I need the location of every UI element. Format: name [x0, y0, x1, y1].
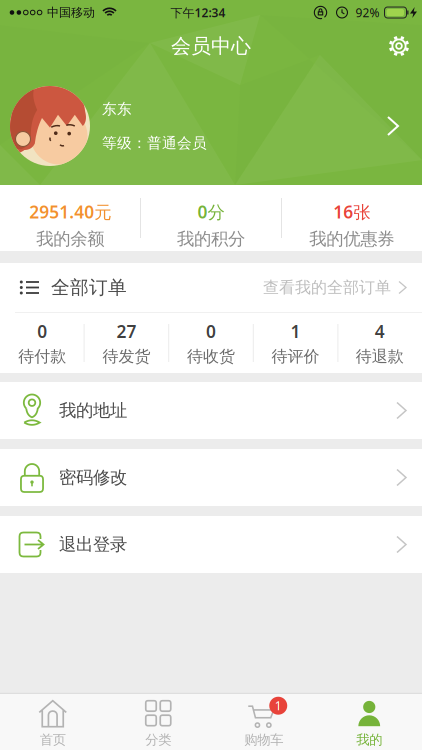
button[interactable]: 0分	[141, 193, 281, 243]
staticText: 退出登录	[59, 534, 127, 555]
staticText: 1	[290, 320, 300, 343]
staticText: 0	[206, 320, 216, 343]
staticText: 我的积分	[177, 228, 245, 250]
staticText: 购物车	[244, 732, 283, 748]
staticText: 分类	[145, 732, 171, 748]
button[interactable]: 0	[0, 320, 84, 366]
staticText: 我的	[356, 732, 382, 748]
button[interactable]: 东东	[0, 67, 422, 185]
button[interactable]: Settings	[388, 35, 422, 57]
staticText: 全部订单	[51, 276, 127, 299]
staticText: 密码修改	[59, 467, 127, 488]
staticText: 下午12:34	[170, 4, 225, 20]
staticText: 1	[275, 698, 282, 714]
staticText: 2951.40元	[29, 200, 111, 223]
staticText: 待退款	[356, 347, 404, 366]
button[interactable]: 16张	[281, 193, 422, 243]
staticText: 92%	[355, 4, 379, 20]
staticText: 4	[375, 320, 385, 343]
staticText: 待付款	[18, 347, 66, 366]
button[interactable]: 4	[338, 320, 422, 366]
button[interactable]: 2951.40元	[0, 193, 141, 243]
staticText: 27	[117, 320, 137, 343]
staticText: 0	[37, 320, 47, 343]
staticText: 待评价	[271, 347, 319, 366]
button[interactable]: 全部订单	[0, 263, 422, 312]
button[interactable]: 退出登录	[0, 516, 422, 573]
button[interactable]: 密码修改	[0, 449, 422, 506]
staticText: 查看我的全部订单	[263, 278, 391, 297]
staticText: 我的优惠券	[309, 228, 394, 250]
button[interactable]: 1	[253, 320, 338, 366]
staticText: 东东	[102, 100, 132, 118]
staticText: 待发货	[103, 347, 151, 366]
staticText: 待收货	[187, 347, 235, 366]
button[interactable]: 我的地址	[0, 382, 422, 439]
staticText: 中国移动	[47, 5, 95, 20]
button[interactable]: 1	[211, 694, 316, 750]
staticText: 我的余额	[36, 228, 104, 250]
staticText: 16张	[333, 200, 370, 223]
button[interactable]: 首页	[0, 694, 105, 750]
staticText: 我的地址	[59, 400, 127, 421]
button[interactable]: 27	[84, 320, 169, 366]
staticText: 会员中心	[171, 34, 251, 58]
staticText: 等级：普通会员	[102, 134, 207, 152]
button[interactable]: 0	[169, 320, 253, 366]
button[interactable]: 我的	[316, 694, 422, 750]
staticText: 首页	[40, 732, 66, 748]
staticText: 0分	[197, 200, 224, 223]
button[interactable]: 分类	[105, 694, 211, 750]
